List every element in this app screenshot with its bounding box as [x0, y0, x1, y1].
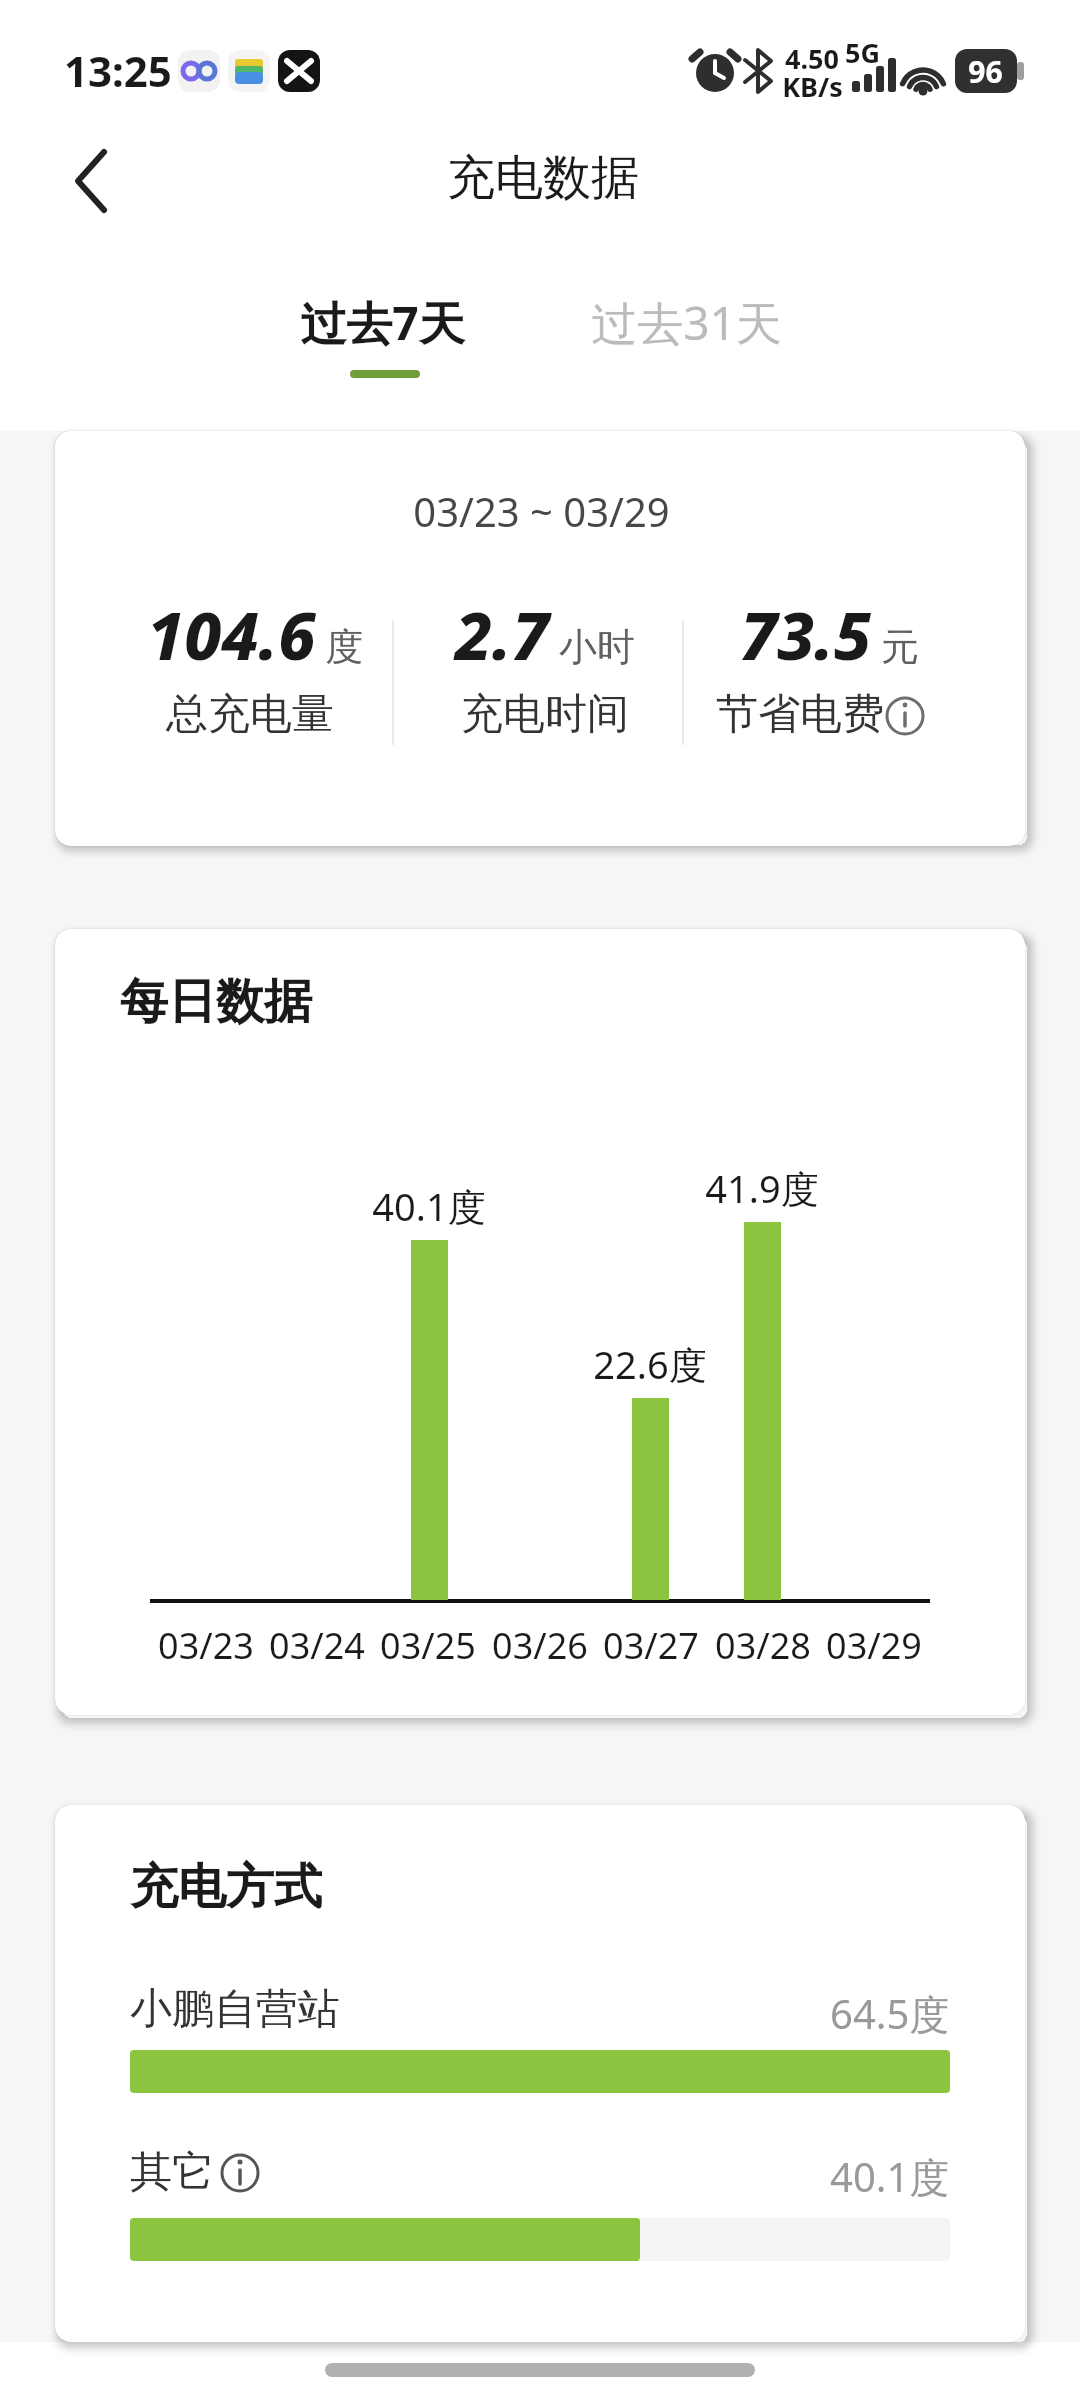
- staticText: 64.5度: [830, 1986, 950, 2041]
- staticText: 22.6度: [593, 1338, 707, 1390]
- staticText: 03/23 ~ 03/29: [413, 484, 670, 538]
- staticText: 40.1度: [830, 2149, 950, 2204]
- staticText: 过去7天: [300, 291, 465, 354]
- staticText: 充电时间: [461, 688, 629, 741]
- staticText: 03/25: [380, 1621, 476, 1670]
- button[interactable]: [48, 141, 128, 221]
- staticText: 03/27: [603, 1621, 699, 1670]
- staticText: 5G: [845, 34, 880, 71]
- button[interactable]: 小鹏自营站: [0, 0, 600, 100]
- staticText: 4.50: [785, 40, 839, 77]
- staticText: 充电数据: [447, 148, 639, 208]
- staticText: 其它: [130, 2146, 214, 2199]
- staticText: 03/26: [492, 1621, 588, 1670]
- staticText: 03/29: [826, 1621, 922, 1670]
- button[interactable]: 过去31天: [0, 0, 600, 100]
- staticText: 40.1度: [372, 1180, 486, 1232]
- staticText: 过去31天: [591, 291, 782, 354]
- button[interactable]: 过去7天: [0, 0, 600, 100]
- staticText: 03/23: [158, 1621, 254, 1670]
- staticText: 小鹏自营站: [130, 1983, 340, 2036]
- staticText: 73.5 元: [740, 589, 920, 679]
- staticText: 13:25: [64, 42, 172, 99]
- staticText: 03/24: [269, 1621, 365, 1670]
- button[interactable]: 其它: [0, 0, 600, 100]
- staticText: KB/s: [782, 68, 843, 105]
- staticText: 96: [968, 51, 1003, 92]
- staticText: 2.7 小时: [455, 589, 635, 679]
- staticText: 41.9度: [705, 1162, 819, 1214]
- staticText: 总充电量: [166, 688, 334, 741]
- staticText: 03/28: [715, 1621, 811, 1670]
- staticText: 充电方式: [130, 1857, 322, 1917]
- staticText: 每日数据: [120, 972, 312, 1032]
- staticText: 104.6 度: [147, 589, 364, 679]
- staticText: 节省电费: [716, 688, 884, 741]
